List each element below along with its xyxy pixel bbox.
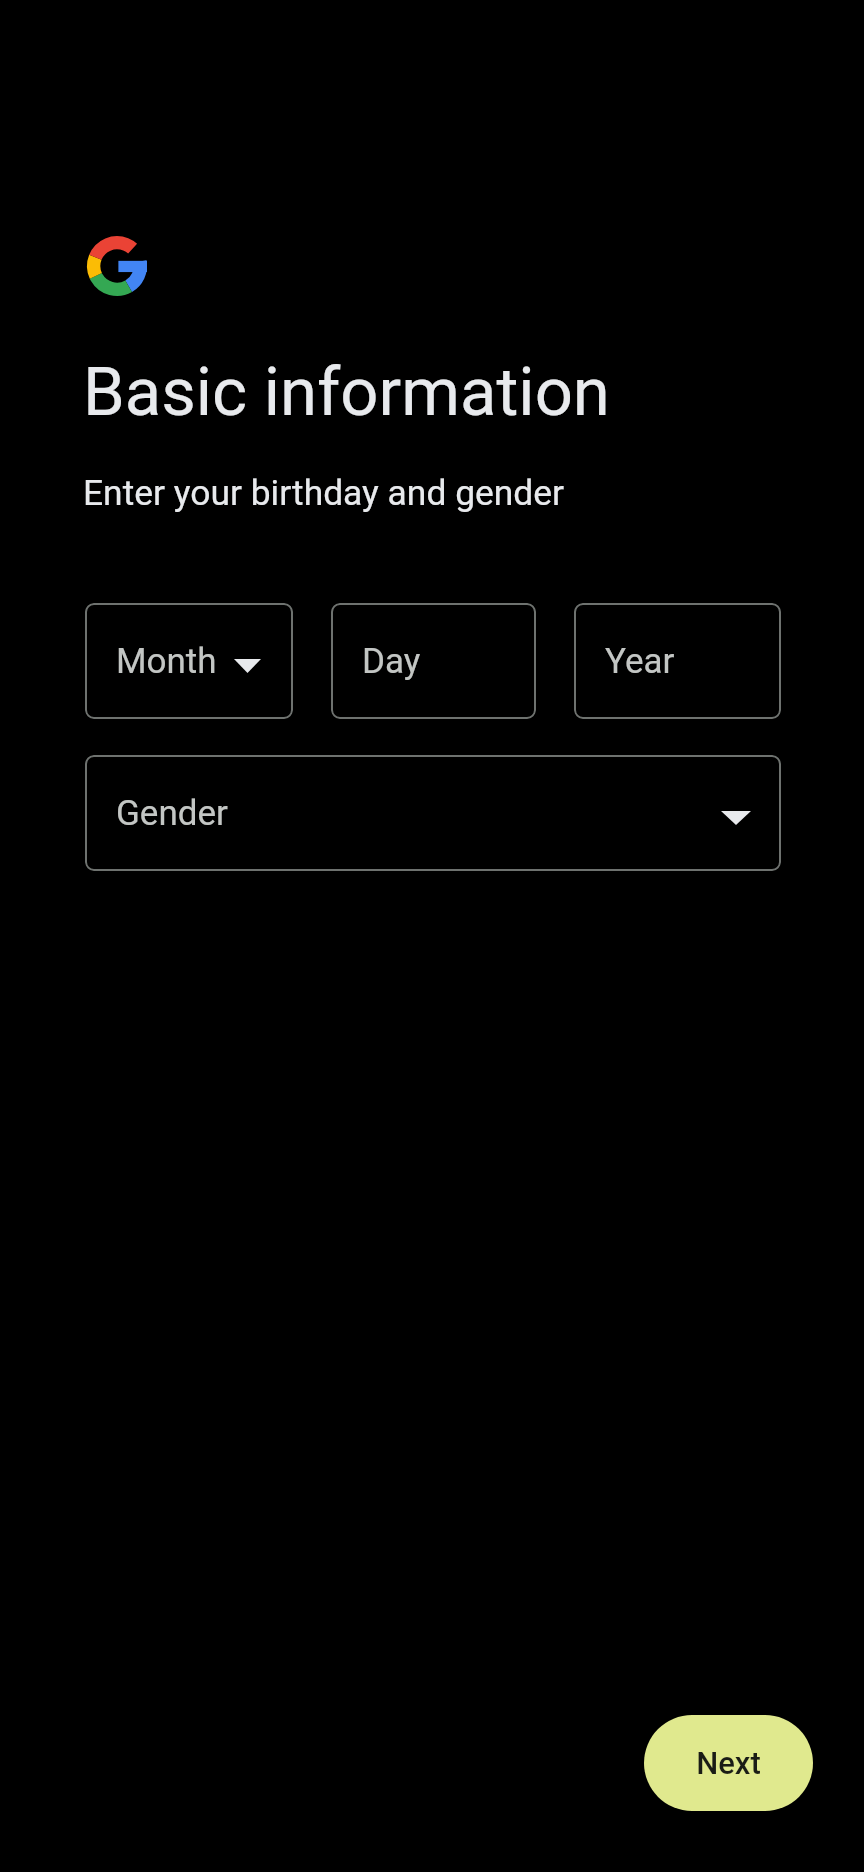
staticText: Enter your birthday and gender <box>83 472 565 513</box>
staticText: Month <box>116 641 217 682</box>
staticText: Day <box>362 641 421 682</box>
staticText: Next <box>696 1745 761 1781</box>
staticText: Gender <box>116 793 228 834</box>
staticText: Basic information <box>83 353 610 432</box>
other: Google <box>87 236 147 296</box>
button[interactable]: Month <box>85 603 293 719</box>
button[interactable]: Year <box>574 603 781 719</box>
staticText: Year <box>605 641 675 682</box>
button[interactable]: Next <box>644 1715 813 1811</box>
button[interactable]: Day <box>331 603 536 719</box>
button[interactable]: Gender <box>85 755 781 871</box>
